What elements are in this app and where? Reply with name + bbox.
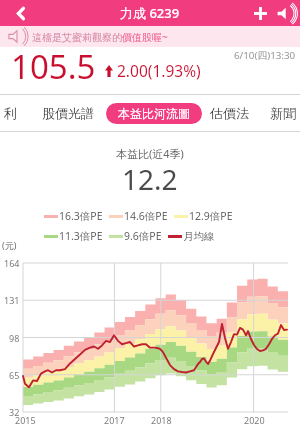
button[interactable]: 11.3倍PE (44, 229, 103, 243)
button[interactable]: Announcements (273, 2, 295, 24)
staticText: 2018 (151, 414, 172, 426)
button[interactable]: 12.9倍PE (174, 209, 233, 223)
button[interactable]: Add to portfolio (249, 2, 271, 24)
staticText: 105.5 (11, 44, 96, 89)
staticText: 股價光譜 (42, 105, 94, 121)
staticText: (元) (2, 239, 17, 251)
staticText: 12.2 (122, 160, 178, 198)
staticText: 2017 (104, 414, 125, 426)
staticText: 9.6倍PE (124, 229, 162, 243)
staticText: 11.3倍PE (59, 229, 103, 243)
staticText: 131 (4, 294, 20, 306)
staticText: 本益比河流圖 (118, 106, 190, 121)
staticText: 2015 (15, 414, 36, 426)
button[interactable]: 股價光譜 (38, 99, 98, 127)
staticText: 14.6倍PE (124, 209, 168, 223)
button[interactable]: 9.6倍PE (109, 229, 162, 243)
staticText: 12.9倍PE (189, 209, 233, 223)
button[interactable]: 估價法 (206, 99, 253, 127)
staticText: 這檔是艾蜜莉觀察的 (32, 31, 122, 44)
button[interactable]: 月均線 (168, 230, 215, 243)
staticText: 價值股喔~ (122, 30, 168, 44)
button[interactable]: 本益比河流圖 (106, 103, 202, 124)
staticText: 力成 6239 (120, 4, 180, 22)
staticText: 2020 (244, 414, 265, 426)
staticText: 65 (9, 369, 20, 381)
staticText: 2.00(1.93%) (117, 60, 201, 81)
button[interactable]: 14.6倍PE (109, 209, 168, 223)
staticText: 利 (4, 105, 17, 121)
button[interactable]: 16.3倍PE (44, 209, 103, 223)
staticText: 32 (9, 406, 20, 418)
button[interactable]: Back (9, 2, 31, 24)
staticText: 6/10(四)13:30 (234, 49, 296, 62)
staticText: 估價法 (210, 105, 249, 121)
staticText: 本益比(近4季) (116, 146, 184, 161)
staticText: 98 (9, 332, 20, 344)
button[interactable]: 利 (0, 99, 21, 127)
staticText: 164 (4, 257, 20, 269)
button[interactable]: 新聞 (266, 99, 300, 127)
staticText: 月均線 (183, 230, 215, 243)
staticText: 16.3倍PE (59, 209, 103, 223)
staticText: 新聞 (270, 105, 296, 121)
